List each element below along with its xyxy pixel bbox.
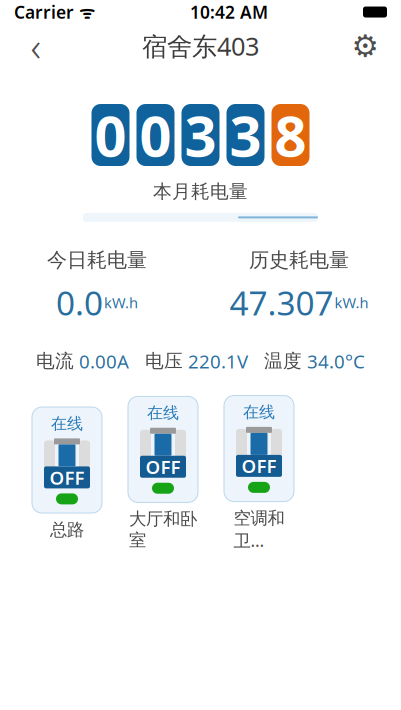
staticText: kW.h	[334, 293, 368, 312]
staticText: 温度	[264, 350, 302, 373]
staticText: 3	[184, 98, 216, 172]
button[interactable]: 在线	[222, 395, 296, 552]
staticText: 3	[229, 98, 261, 172]
staticText: 本月耗电量	[153, 180, 248, 203]
staticText: kW.h	[104, 293, 138, 312]
staticText: 在线	[51, 414, 83, 433]
staticText: 0	[94, 98, 126, 172]
staticText: 电流	[36, 350, 74, 373]
staticText: 电压	[145, 350, 183, 373]
staticText: ⚙	[351, 29, 378, 63]
staticText: 47.307	[229, 280, 333, 325]
staticText: OFF	[241, 453, 276, 478]
staticText: 220.1V	[188, 349, 248, 374]
staticText: 宿舍东403	[142, 29, 259, 63]
staticText: 0.00A	[79, 349, 129, 374]
button[interactable]: Settings	[343, 24, 387, 68]
staticText: OFF	[145, 454, 180, 479]
staticText: 大厅和卧室	[129, 508, 197, 551]
staticText: 在线	[243, 402, 275, 422]
staticText: ‹	[30, 19, 41, 72]
button[interactable]: Back	[14, 24, 58, 68]
staticText: 0.0	[56, 280, 103, 325]
staticText: ᯤ	[74, 0, 95, 23]
staticText: 今日耗电量	[47, 248, 147, 272]
button[interactable]: 在线	[126, 396, 200, 551]
staticText: 空调和卫…	[233, 507, 284, 552]
staticText: 34.0°C	[307, 349, 365, 374]
staticText: OFF	[49, 465, 84, 490]
staticText: 在线	[147, 403, 179, 423]
staticText: 历史耗电量	[249, 248, 349, 272]
staticText: 0	[139, 98, 171, 172]
staticText: Carrier	[14, 0, 74, 23]
staticText: 总路	[50, 519, 84, 540]
staticText: 8	[274, 98, 306, 172]
button[interactable]: 在线	[30, 407, 104, 540]
staticText: 10:42 AM	[190, 0, 268, 23]
